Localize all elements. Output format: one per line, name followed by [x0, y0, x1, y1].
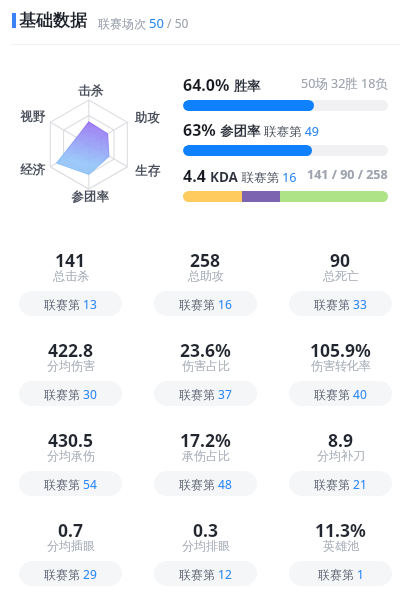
- staticText: 总击杀: [53, 268, 89, 283]
- staticText: 联赛第 16: [179, 296, 232, 312]
- staticText: 联赛第 13: [44, 296, 97, 312]
- button[interactable]: 17.2%: [138, 428, 273, 496]
- button[interactable]: 258: [138, 248, 273, 316]
- button[interactable]: 0.7: [3, 518, 138, 586]
- staticText: 11.3%: [315, 518, 366, 537]
- staticText: 422.8: [48, 338, 93, 357]
- button[interactable]: 0.3: [138, 518, 273, 586]
- button[interactable]: 8.9: [273, 428, 408, 496]
- staticText: 8.9: [328, 428, 353, 447]
- button[interactable]: 105.9%: [273, 338, 408, 406]
- staticText: 23.6%: [180, 338, 231, 357]
- button[interactable]: 422.8: [3, 338, 138, 406]
- staticText: 联赛第 37: [179, 386, 232, 402]
- staticText: 64.0% 胜率: [183, 74, 261, 92]
- staticText: 分均插眼: [47, 538, 95, 553]
- staticText: 258: [190, 248, 221, 267]
- staticText: 视野: [20, 109, 45, 125]
- staticText: 63% 参团率 联赛第 49: [183, 119, 319, 137]
- staticText: 经济: [20, 162, 45, 178]
- staticText: 总死亡: [323, 268, 359, 283]
- staticText: 联赛场次 50 / 50: [98, 14, 189, 32]
- staticText: 联赛第 1: [318, 566, 364, 582]
- staticText: 参团率: [71, 189, 109, 205]
- staticText: 联赛第 21: [314, 476, 367, 492]
- staticText: 50场 32胜 18负: [301, 75, 388, 92]
- button[interactable]: 90: [273, 248, 408, 316]
- staticText: 伤害转化率: [311, 358, 371, 373]
- staticText: 联赛第 12: [179, 566, 232, 582]
- staticText: 总助攻: [188, 268, 224, 283]
- button[interactable]: 23.6%: [138, 338, 273, 406]
- staticText: 助攻: [135, 110, 160, 126]
- staticText: 0.7: [58, 518, 83, 537]
- staticText: 90: [330, 248, 351, 267]
- staticText: 联赛第 30: [44, 386, 97, 402]
- staticText: 分均排眼: [182, 538, 230, 553]
- staticText: 英雄池: [323, 538, 359, 553]
- staticText: 伤害占比: [182, 358, 230, 373]
- staticText: 分均承伤: [47, 448, 95, 463]
- staticText: 联赛第 33: [314, 296, 367, 312]
- staticText: 联赛第 54: [44, 476, 97, 492]
- staticText: 430.5: [48, 428, 93, 447]
- staticText: 分均伤害: [47, 358, 95, 373]
- button[interactable]: 11.3%: [273, 518, 408, 586]
- staticText: 141: [55, 248, 86, 267]
- staticText: 141 / 90 / 258: [307, 166, 388, 183]
- staticText: 17.2%: [180, 428, 231, 447]
- staticText: 基础数据: [19, 10, 87, 31]
- staticText: 生存: [135, 163, 160, 179]
- staticText: 承伤占比: [182, 448, 230, 463]
- staticText: 击杀: [78, 83, 103, 99]
- staticText: 联赛第 29: [44, 566, 97, 582]
- staticText: 0.3: [193, 518, 218, 537]
- staticText: 4.4 KDA 联赛第 16: [183, 165, 297, 183]
- button[interactable]: 430.5: [3, 428, 138, 496]
- staticText: 联赛第 48: [179, 476, 232, 492]
- staticText: 联赛第 40: [314, 386, 367, 402]
- staticText: 105.9%: [310, 338, 371, 357]
- button[interactable]: 141: [3, 248, 138, 316]
- staticText: 分均补刀: [317, 448, 365, 463]
